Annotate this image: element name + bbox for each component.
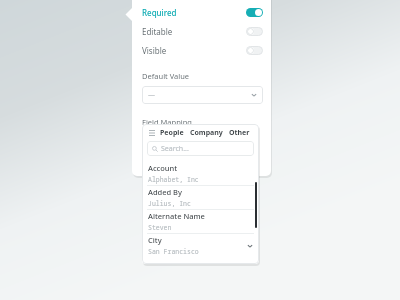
- staticText: Julius, Inc: [148, 199, 191, 208]
- staticText: Editable: [142, 26, 173, 37]
- staticText: Other: [229, 128, 250, 138]
- button[interactable]: Company: [190, 128, 223, 138]
- button[interactable]: City: [142, 234, 259, 257]
- button[interactable]: Off: [246, 27, 263, 36]
- button[interactable]: Visible: [142, 44, 263, 57]
- staticText: Account: [148, 163, 178, 173]
- button[interactable]: Search...: [147, 141, 254, 156]
- button[interactable]: —: [142, 86, 263, 104]
- button[interactable]: Alternate Name: [142, 210, 259, 233]
- staticText: Field Mapping: [142, 117, 192, 127]
- staticText: —: [148, 90, 155, 100]
- staticText: Steven: [148, 223, 172, 232]
- staticText: People: [160, 128, 184, 138]
- staticText: City: [148, 235, 162, 245]
- button[interactable]: Account: [142, 162, 259, 185]
- staticText: San Francisco: [148, 247, 199, 256]
- staticText: Search...: [161, 144, 189, 154]
- staticText: Alternate Name: [148, 211, 205, 221]
- staticText: Required: [142, 7, 177, 18]
- staticText: Alphabet, Inc: [148, 175, 199, 184]
- staticText: Added By: [148, 187, 182, 197]
- button[interactable]: Required: [142, 6, 263, 19]
- button[interactable]: Editable: [142, 25, 263, 38]
- button[interactable]: Off: [246, 46, 263, 55]
- button[interactable]: Other: [229, 128, 250, 138]
- staticText: Company: [190, 128, 223, 138]
- button[interactable]: People: [160, 128, 184, 138]
- staticText: Default Value: [142, 71, 190, 81]
- button[interactable]: Added By: [142, 186, 259, 209]
- staticText: Visible: [142, 45, 167, 56]
- button[interactable]: On: [246, 8, 263, 17]
- button[interactable]: Menu: [147, 128, 156, 137]
